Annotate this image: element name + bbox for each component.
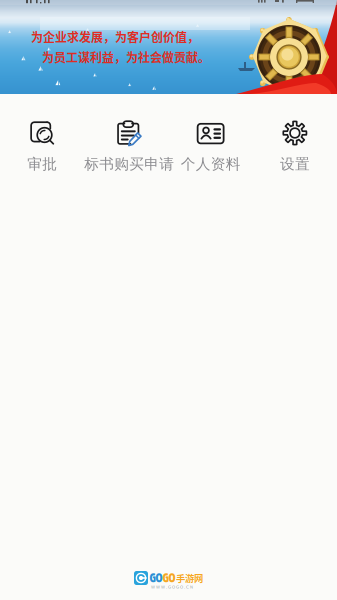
staticText: GO — [162, 571, 175, 585]
button[interactable]: 设置 — [253, 116, 337, 177]
staticText: 个人资料 — [181, 155, 241, 173]
staticText: 审批 — [27, 155, 57, 173]
button[interactable]: 审批 — [0, 116, 84, 177]
staticText: 为企业求发展，为客户创价值， — [31, 28, 199, 45]
staticText: 标书购买申请 — [84, 155, 174, 173]
staticText: 设置 — [280, 155, 310, 173]
button[interactable]: 个人资料 — [168, 116, 253, 177]
staticText: 手游网 — [176, 571, 203, 585]
button[interactable]: 标书购买申请 — [84, 116, 168, 177]
staticText: GO — [149, 571, 162, 585]
staticText: W W W . G O G O . C N — [151, 585, 193, 589]
staticText: 为员工谋利益，为社会做贡献。 — [42, 48, 210, 66]
